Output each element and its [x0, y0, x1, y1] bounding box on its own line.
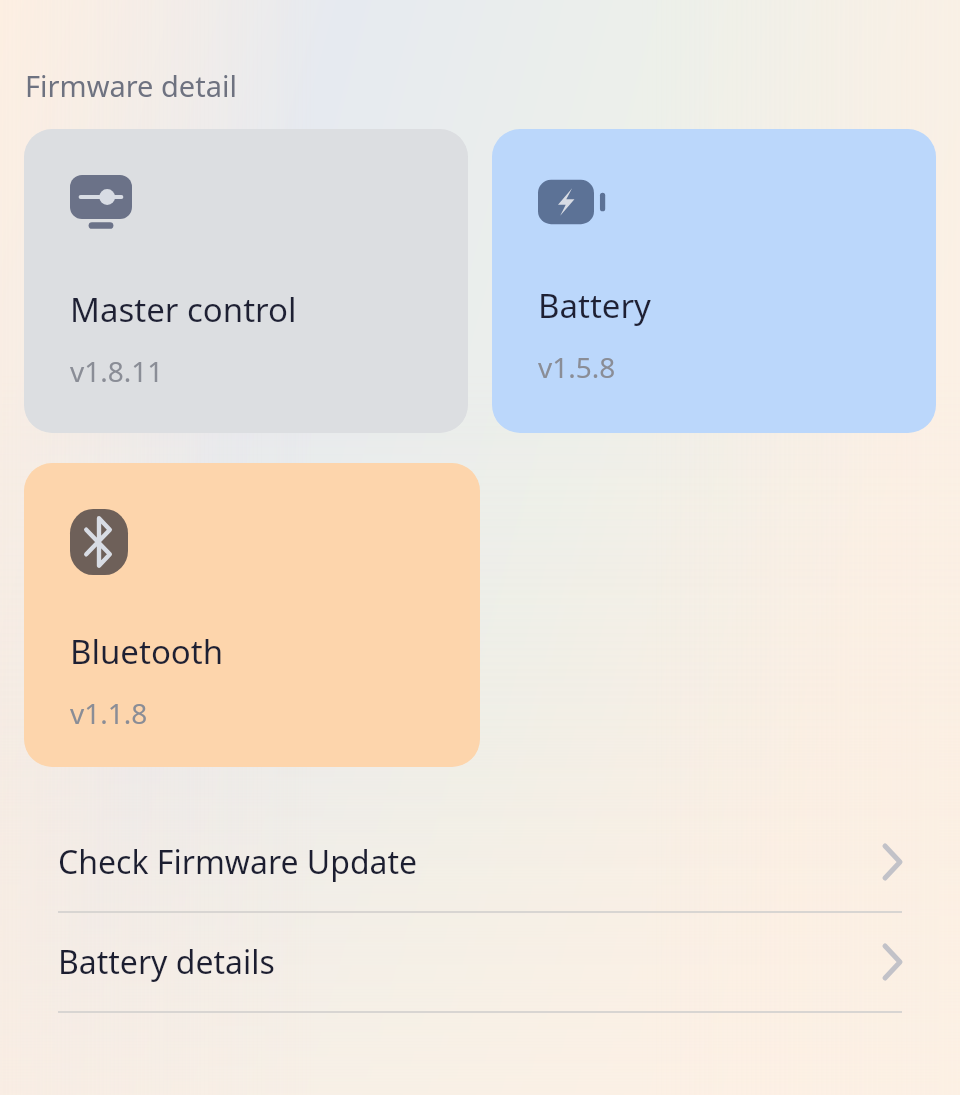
- staticText: Master control: [70, 287, 297, 332]
- staticText: Check Firmware Update: [58, 840, 418, 884]
- other: Battery: [538, 175, 608, 229]
- staticText: v1.8.11: [70, 352, 164, 390]
- staticText: Battery details: [58, 940, 275, 984]
- staticText: Battery: [538, 283, 651, 328]
- button[interactable]: Master control: [24, 129, 468, 433]
- staticText: v1.1.8: [70, 694, 148, 732]
- staticText: Firmware detail: [25, 66, 237, 105]
- button[interactable]: Bluetooth: [24, 463, 480, 767]
- button[interactable]: Battery: [492, 129, 936, 433]
- other: Bluetooth: [70, 509, 128, 575]
- staticText: v1.5.8: [538, 348, 616, 386]
- button[interactable]: Check Firmware Update: [0, 813, 960, 911]
- button[interactable]: Battery details: [0, 913, 960, 1011]
- staticText: Bluetooth: [70, 629, 224, 674]
- other: Master control: [70, 175, 132, 233]
